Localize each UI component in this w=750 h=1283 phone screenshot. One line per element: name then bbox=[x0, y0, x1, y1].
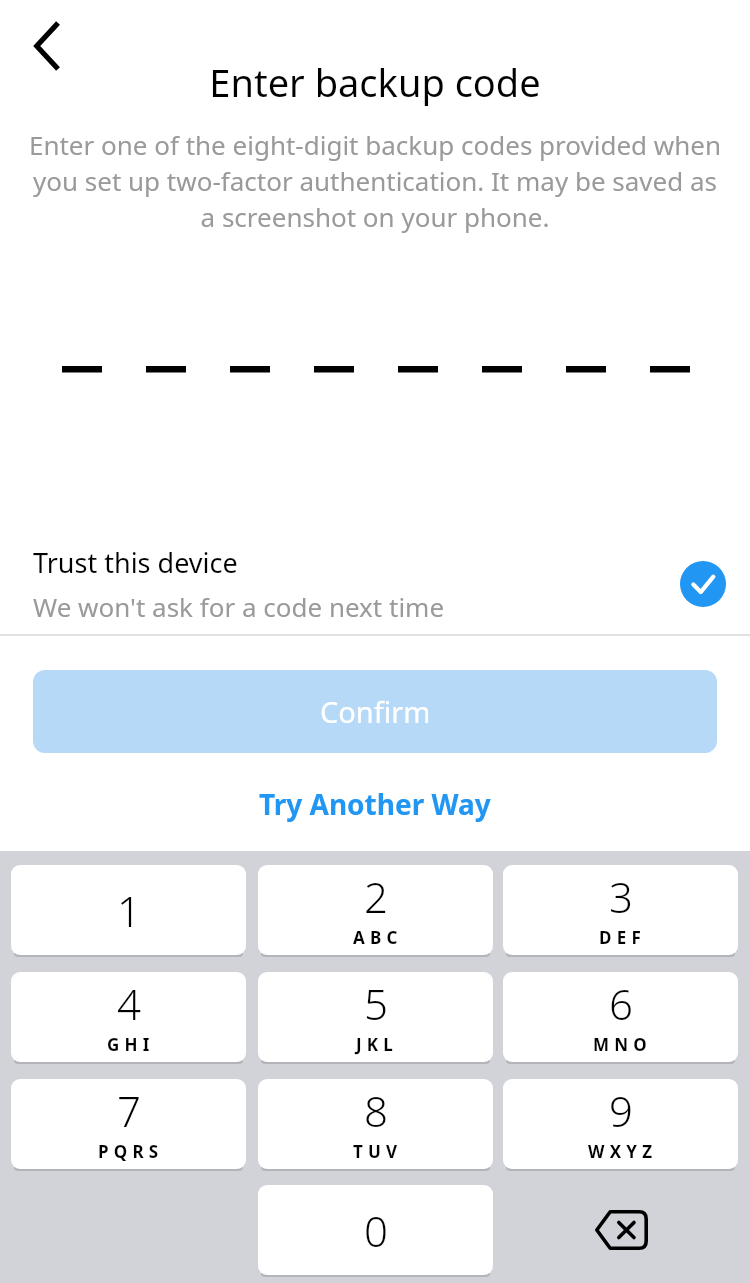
button[interactable]: Backspace bbox=[503, 1185, 738, 1275]
staticText: Trust this device bbox=[33, 544, 238, 581]
staticText: 2 bbox=[364, 868, 388, 925]
button[interactable]: 0 bbox=[258, 1185, 493, 1275]
button[interactable]: Try Another Way bbox=[247, 779, 503, 829]
staticText: T U V bbox=[353, 1140, 399, 1163]
button[interactable]: 7 bbox=[11, 1079, 246, 1169]
staticText: 3 bbox=[609, 868, 633, 925]
staticText: D E F bbox=[599, 926, 642, 949]
button[interactable]: Confirm bbox=[33, 670, 717, 753]
staticText: 5 bbox=[364, 975, 388, 1032]
staticText: P Q R S bbox=[98, 1140, 160, 1163]
staticText: 9 bbox=[609, 1082, 633, 1139]
staticText: Enter backup code bbox=[0, 56, 750, 108]
button[interactable]: 3 bbox=[503, 865, 738, 955]
button[interactable]: 9 bbox=[503, 1079, 738, 1169]
button[interactable]: 1 bbox=[11, 865, 246, 955]
staticText: Try Another Way bbox=[259, 785, 491, 823]
staticText: 6 bbox=[609, 975, 633, 1032]
staticText: Enter one of the eight-digit backup code… bbox=[28, 127, 722, 235]
staticText: 8 bbox=[364, 1082, 388, 1139]
staticText: G H I bbox=[107, 1033, 151, 1056]
staticText: 7 bbox=[117, 1082, 141, 1139]
staticText: 0 bbox=[364, 1202, 388, 1259]
button[interactable]: 6 bbox=[503, 972, 738, 1062]
staticText: M N O bbox=[593, 1033, 648, 1056]
button[interactable]: 2 bbox=[258, 865, 493, 955]
button[interactable]: 4 bbox=[11, 972, 246, 1062]
staticText: 1 bbox=[117, 882, 141, 939]
staticText: We won't ask for a code next time bbox=[33, 589, 445, 624]
button[interactable]: Back bbox=[16, 14, 80, 78]
staticText: Confirm bbox=[320, 692, 431, 731]
button[interactable]: 8 bbox=[258, 1079, 493, 1169]
staticText: J K L bbox=[356, 1033, 395, 1056]
staticText: W X Y Z bbox=[588, 1140, 654, 1163]
button[interactable]: 5 bbox=[258, 972, 493, 1062]
button[interactable]: Trust this device bbox=[0, 534, 750, 634]
staticText: 4 bbox=[117, 975, 141, 1032]
staticText: A B C bbox=[353, 926, 399, 949]
